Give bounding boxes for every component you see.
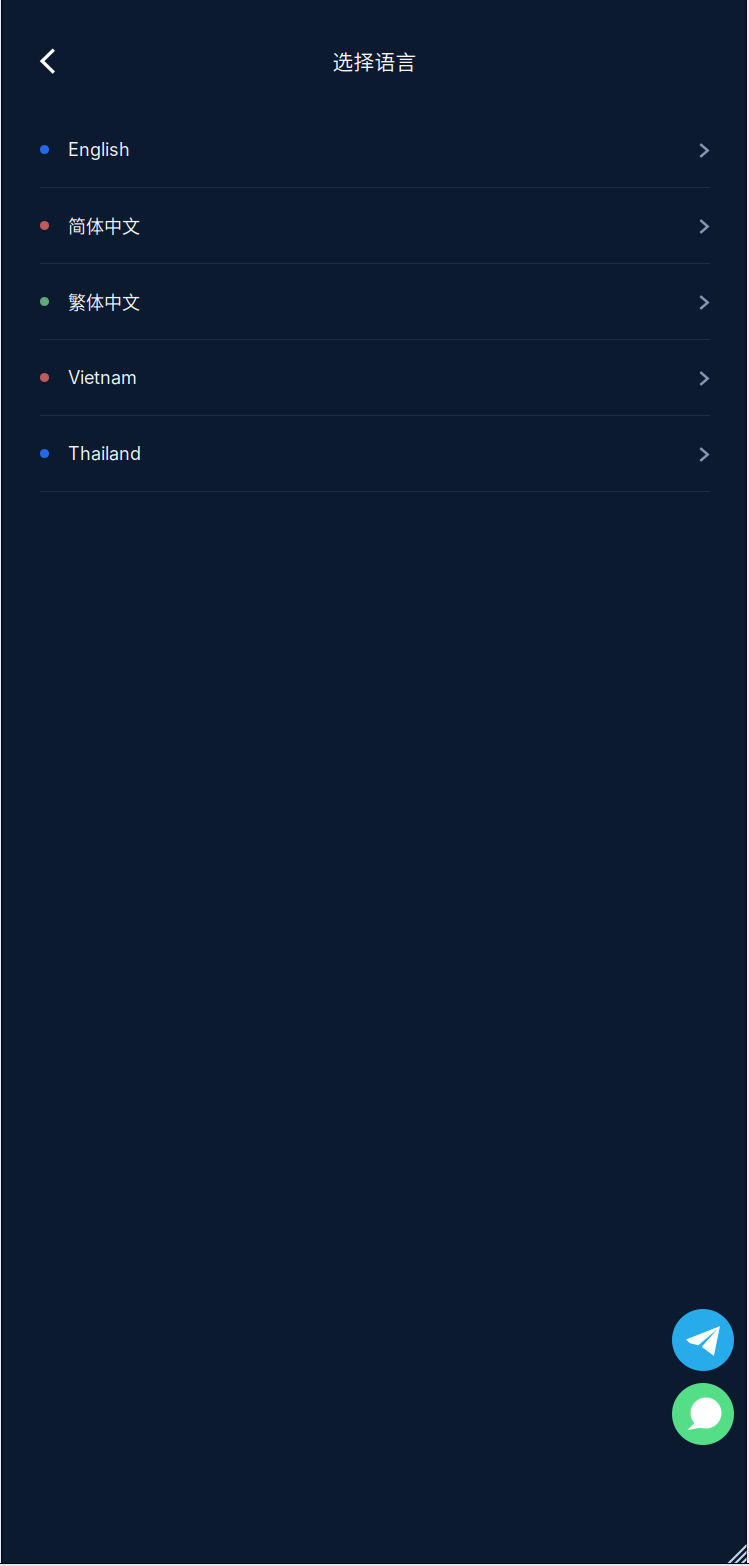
button[interactable]: Chat xyxy=(672,1383,734,1445)
staticText: 简体中文 xyxy=(68,212,140,239)
staticText: 选择语言 xyxy=(332,46,416,76)
staticText: 繁体中文 xyxy=(68,288,140,315)
staticText: Thailand xyxy=(68,443,141,464)
button[interactable]: Vietnam xyxy=(0,340,749,416)
button[interactable]: Thailand xyxy=(0,416,749,492)
staticText: English xyxy=(68,139,130,160)
button[interactable]: Telegram xyxy=(672,1309,734,1371)
staticText: Vietnam xyxy=(68,367,137,388)
button[interactable]: 简体中文 xyxy=(0,188,749,264)
button[interactable]: 繁体中文 xyxy=(0,264,749,340)
button[interactable]: Back xyxy=(24,37,72,85)
button[interactable]: English xyxy=(0,112,749,188)
